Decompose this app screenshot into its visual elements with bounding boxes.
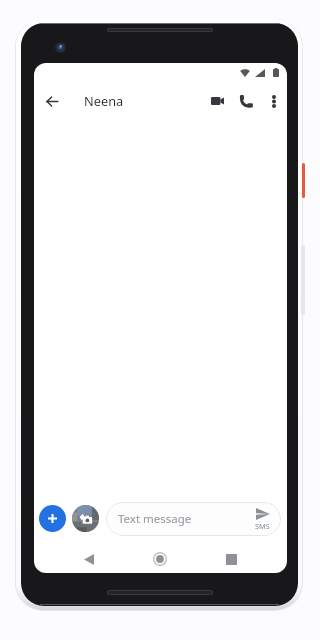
button[interactable]: Call <box>232 87 260 115</box>
staticText: SMS <box>255 521 270 531</box>
button[interactable]: Text message <box>106 502 281 536</box>
button[interactable]: Back <box>37 86 67 116</box>
staticText: Neena <box>84 92 124 109</box>
button[interactable]: Video call <box>203 87 231 115</box>
button[interactable]: New conversation <box>39 505 66 532</box>
button[interactable]: Back <box>78 548 100 570</box>
button[interactable]: Home <box>149 548 171 570</box>
button[interactable]: Recent apps <box>220 548 242 570</box>
staticText: Text message <box>118 511 192 527</box>
button[interactable]: More options <box>260 87 287 115</box>
button[interactable]: Camera <box>72 505 99 532</box>
